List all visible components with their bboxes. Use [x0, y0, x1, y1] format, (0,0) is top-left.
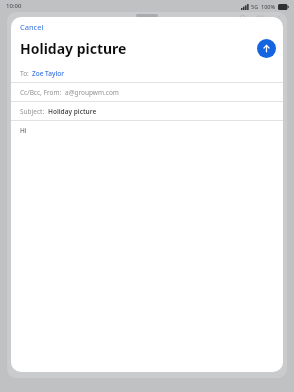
- staticText: Subject:: [20, 107, 45, 116]
- button[interactable]: Send: [257, 39, 276, 58]
- staticText: Hi: [20, 126, 27, 135]
- staticText: Holiday picture: [20, 39, 127, 58]
- staticText: 100%: [261, 3, 276, 10]
- button[interactable]: Subject:: [11, 102, 283, 120]
- staticText: a@groupwm.com: [65, 88, 119, 97]
- staticText: To:: [20, 69, 29, 78]
- staticText: 5G: [251, 3, 259, 10]
- button[interactable]: Cancel: [17, 20, 47, 34]
- staticText: Holiday picture: [48, 107, 97, 116]
- staticText: Zoe Taylor: [32, 69, 64, 78]
- staticText: Cc/Bcc, From:: [20, 88, 62, 97]
- staticText: 10:00: [6, 2, 22, 10]
- button[interactable]: To:: [11, 64, 283, 82]
- staticText: Cancel: [20, 22, 44, 32]
- button[interactable]: Cc/Bcc, From:: [11, 83, 283, 101]
